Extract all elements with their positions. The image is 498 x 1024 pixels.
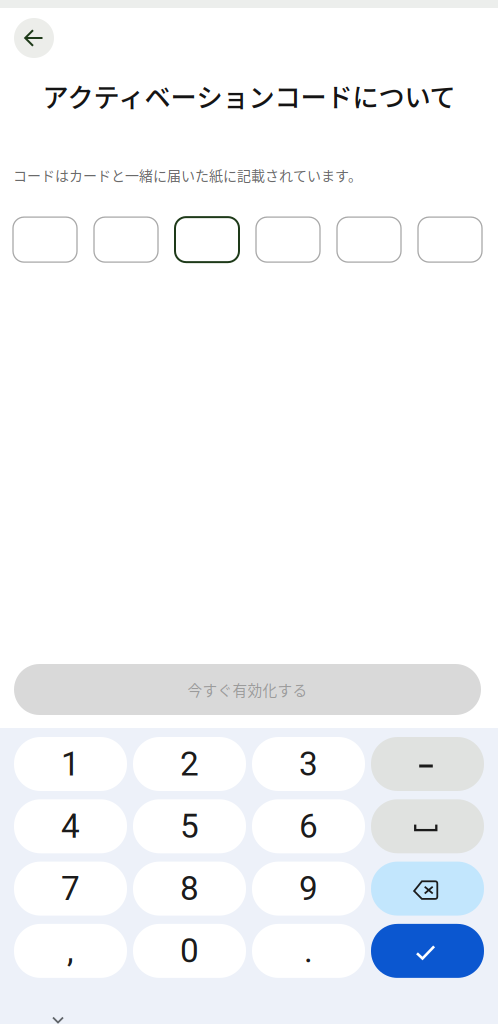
- button[interactable]: 今すぐ有効化する: [14, 664, 481, 715]
- staticText: 3: [299, 744, 318, 784]
- staticText: コードはカードと一緒に届いた紙に記載されています。: [13, 165, 362, 185]
- button[interactable]: Back: [14, 18, 54, 58]
- staticText: ,: [67, 931, 74, 970]
- button[interactable]: 1: [14, 737, 127, 791]
- button[interactable]: ,: [14, 924, 127, 978]
- staticText: 4: [61, 807, 80, 846]
- button[interactable]: .: [252, 924, 365, 978]
- button[interactable]: Hyphen: [371, 737, 484, 791]
- staticText: 9: [299, 869, 318, 908]
- staticText: 0: [180, 931, 199, 970]
- staticText: 6: [299, 807, 318, 846]
- button[interactable]: 0: [133, 924, 246, 978]
- button[interactable]: Activation code character 6: [418, 217, 482, 262]
- button[interactable]: 5: [133, 799, 246, 853]
- button[interactable]: 3: [252, 737, 365, 791]
- button[interactable]: 2: [133, 737, 246, 791]
- staticText: 8: [180, 869, 199, 908]
- button[interactable]: Activation code character 1: [13, 217, 77, 262]
- button[interactable]: 9: [252, 862, 365, 916]
- staticText: 7: [61, 869, 80, 908]
- button[interactable]: Space: [371, 799, 484, 853]
- staticText: アクティベーションコードについて: [42, 77, 455, 115]
- staticText: 2: [180, 744, 199, 784]
- staticText: .: [304, 931, 313, 970]
- button[interactable]: Activation code character 5: [337, 217, 401, 262]
- staticText: 5: [180, 807, 199, 846]
- button[interactable]: Activation code character 2: [94, 217, 158, 262]
- button[interactable]: Activation code character 3: [175, 217, 239, 262]
- staticText: 今すぐ有効化する: [187, 679, 307, 700]
- staticText: 1: [61, 744, 80, 784]
- button[interactable]: 4: [14, 799, 127, 853]
- button[interactable]: 6: [252, 799, 365, 853]
- button[interactable]: Hide keyboard: [43, 1012, 73, 1024]
- button[interactable]: 8: [133, 862, 246, 916]
- button[interactable]: 7: [14, 862, 127, 916]
- button[interactable]: Backspace: [371, 862, 484, 916]
- button[interactable]: Confirm: [371, 924, 484, 978]
- button[interactable]: Activation code character 4: [256, 217, 320, 262]
